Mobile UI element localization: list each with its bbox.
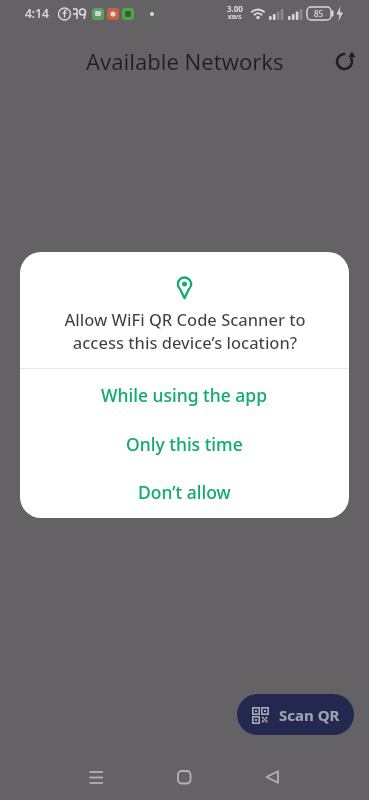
staticText: While using the app (101, 383, 268, 407)
staticText: 4:14 (25, 5, 49, 21)
button[interactable] (170, 763, 198, 791)
button[interactable]: Don’t allow (20, 474, 349, 510)
button[interactable] (82, 763, 110, 791)
staticText: Allow WiFi QR Code Scanner to access thi… (64, 308, 306, 354)
staticText: 85 (314, 8, 324, 19)
staticText: KB/S (228, 13, 242, 21)
staticText: 3.00 (227, 3, 243, 13)
staticText: Available Networks (86, 46, 284, 76)
button[interactable] (257, 763, 285, 791)
button[interactable]: Scan QR (237, 694, 354, 735)
staticText: Don’t allow (138, 480, 231, 504)
button[interactable]: Only this time (20, 426, 349, 462)
staticText: Only this time (126, 432, 243, 456)
staticText: Scan QR (279, 705, 340, 725)
button[interactable]: While using the app (20, 377, 349, 413)
button[interactable] (330, 47, 358, 75)
